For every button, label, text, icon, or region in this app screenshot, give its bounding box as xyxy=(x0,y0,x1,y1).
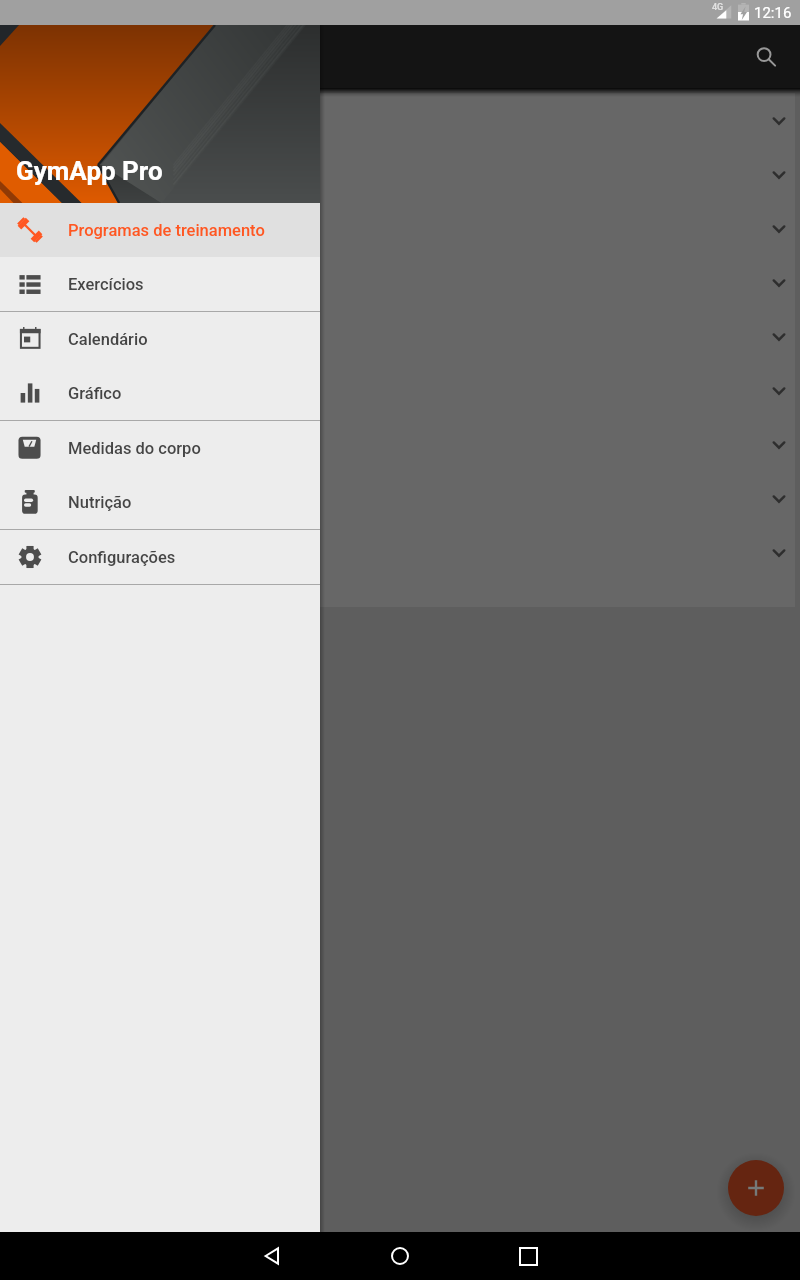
button[interactable]: Back xyxy=(208,1232,336,1280)
staticText: 12:16 xyxy=(754,4,792,22)
staticText: Configurações xyxy=(68,548,176,567)
button[interactable] xyxy=(0,363,795,417)
button[interactable] xyxy=(0,309,795,363)
staticText: Nutrição xyxy=(68,493,132,512)
button[interactable] xyxy=(0,93,795,147)
button[interactable]: Configurações xyxy=(0,530,320,584)
button[interactable]: Medidas do corpo xyxy=(0,421,320,475)
button[interactable]: Calendário xyxy=(0,312,320,366)
staticText: Exercícios xyxy=(68,275,144,294)
button[interactable]: Home xyxy=(336,1232,464,1280)
staticText: GymApp Pro xyxy=(16,156,163,186)
staticText: Gráfico xyxy=(68,384,122,403)
staticText: Medidas do corpo xyxy=(68,439,201,458)
button[interactable]: Nutrição xyxy=(0,475,320,529)
button[interactable] xyxy=(0,471,795,525)
button[interactable] xyxy=(0,255,795,309)
button[interactable] xyxy=(0,417,795,471)
button[interactable] xyxy=(0,201,795,255)
button[interactable]: Gráfico xyxy=(0,366,320,420)
button[interactable]: Exercícios xyxy=(0,257,320,311)
button[interactable]: Search xyxy=(744,35,788,79)
button[interactable]: Add xyxy=(728,1160,784,1216)
button[interactable] xyxy=(0,147,795,201)
staticText: Programas de treinamento xyxy=(68,221,265,240)
staticText: Calendário xyxy=(68,330,148,349)
button[interactable]: Programas de treinamento xyxy=(0,203,320,257)
button[interactable] xyxy=(0,525,795,579)
button[interactable]: Recents xyxy=(464,1232,592,1280)
staticText: 4G xyxy=(712,2,724,13)
